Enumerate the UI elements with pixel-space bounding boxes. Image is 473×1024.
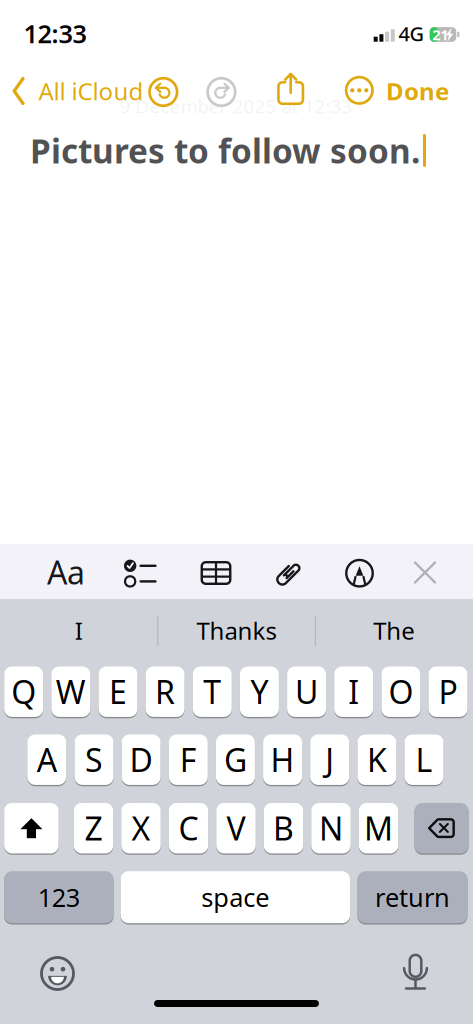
staticText: A <box>37 738 57 781</box>
staticText: C <box>178 807 198 849</box>
staticText: 12:33 <box>23 17 86 50</box>
button[interactable]: H <box>263 733 302 786</box>
button[interactable]: Delete <box>414 802 468 854</box>
staticText: J <box>325 738 334 781</box>
staticText: H <box>271 738 295 781</box>
button[interactable]: F <box>169 733 208 786</box>
button[interactable]: A <box>27 733 66 786</box>
staticText: 21 <box>432 25 448 44</box>
button[interactable]: Done <box>329 74 449 108</box>
staticText: Q <box>11 670 36 713</box>
staticText: Done <box>386 75 449 107</box>
button[interactable]: Q <box>4 665 43 718</box>
button[interactable]: I <box>9 608 149 652</box>
staticText: 4G <box>398 20 424 47</box>
button[interactable]: return <box>357 870 467 924</box>
button[interactable]: B <box>264 802 303 854</box>
staticText: T <box>203 670 221 713</box>
button[interactable]: Markup <box>346 560 373 586</box>
staticText: V <box>226 807 245 849</box>
staticText: Aa <box>47 551 85 593</box>
staticText: B <box>273 807 294 849</box>
staticText: P <box>438 670 457 713</box>
staticText: I <box>75 615 83 646</box>
staticText: W <box>56 670 86 713</box>
staticText: D <box>130 738 153 781</box>
button[interactable]: T <box>193 665 232 718</box>
staticText: N <box>319 807 343 849</box>
staticText: G <box>224 738 247 781</box>
button[interactable]: O <box>381 665 420 718</box>
staticText: Pictures to follow soon. <box>30 128 420 173</box>
staticText: All iCloud <box>38 75 143 107</box>
button[interactable]: U <box>287 665 326 718</box>
button[interactable]: Z <box>74 802 113 854</box>
button[interactable]: E <box>98 665 137 718</box>
staticText: E <box>109 670 127 713</box>
staticText: 123 <box>38 880 80 914</box>
button[interactable]: P <box>428 665 467 718</box>
button[interactable]: Attach <box>280 558 297 588</box>
button[interactable]: X <box>121 802 161 854</box>
button[interactable]: Shift <box>4 802 59 854</box>
button[interactable]: C <box>169 802 208 854</box>
button[interactable]: Thanks <box>166 608 306 652</box>
staticText: L <box>415 738 432 781</box>
button[interactable]: More <box>345 76 374 105</box>
staticText: U <box>295 670 318 713</box>
button[interactable]: K <box>357 733 396 786</box>
button[interactable]: The <box>324 608 464 652</box>
button[interactable]: All iCloud <box>12 74 172 108</box>
button[interactable]: M <box>359 802 398 854</box>
staticText: M <box>364 807 393 849</box>
staticText: The <box>373 615 415 646</box>
button[interactable]: Close <box>414 562 435 583</box>
button[interactable]: Format <box>47 551 85 593</box>
staticText: I <box>348 670 359 713</box>
staticText: Z <box>84 807 102 849</box>
button[interactable]: Emoji <box>41 957 73 989</box>
button[interactable]: W <box>51 665 90 718</box>
staticText: X <box>131 807 150 849</box>
button[interactable]: V <box>216 802 256 854</box>
button[interactable]: N <box>311 802 351 854</box>
staticText: O <box>388 670 413 713</box>
staticText: F <box>180 738 197 781</box>
staticText: 9 December 2025 at 12:33 <box>119 94 352 118</box>
button[interactable]: Table <box>201 561 231 585</box>
button[interactable]: Checklist <box>124 557 155 589</box>
staticText: S <box>85 738 103 781</box>
button[interactable]: G <box>216 733 255 786</box>
staticText: Y <box>250 670 268 713</box>
staticText: R <box>155 670 175 713</box>
staticText: return <box>375 880 450 914</box>
button[interactable]: Redo <box>206 76 237 108</box>
button[interactable]: Y <box>240 665 279 718</box>
staticText: space <box>201 880 269 914</box>
button[interactable]: S <box>74 733 113 786</box>
button[interactable]: 123 <box>4 870 113 924</box>
button[interactable]: Dictate <box>403 953 427 989</box>
button[interactable]: space <box>121 870 350 924</box>
staticText: K <box>367 738 387 781</box>
staticText: Thanks <box>196 615 276 646</box>
button[interactable]: J <box>310 733 349 786</box>
button[interactable]: Share <box>274 73 307 105</box>
button[interactable]: L <box>404 733 443 786</box>
button[interactable]: I <box>334 665 373 718</box>
button[interactable]: R <box>146 665 185 718</box>
button[interactable]: D <box>122 733 161 786</box>
button[interactable]: Undo <box>147 76 179 108</box>
